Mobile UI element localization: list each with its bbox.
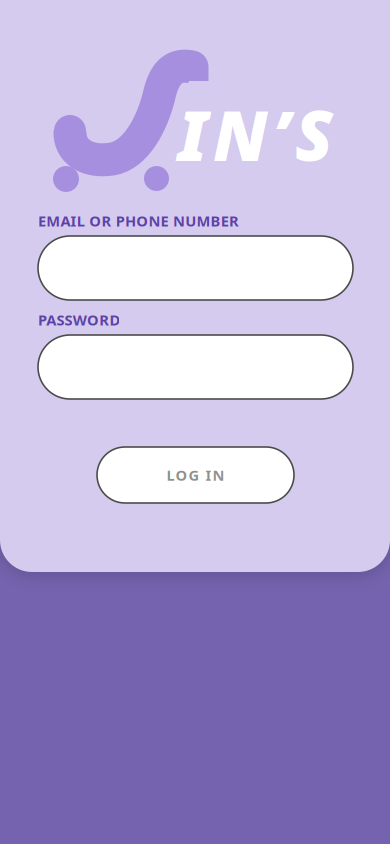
staticText: PASSWORD [38, 310, 120, 329]
staticText: LOG IN [166, 465, 224, 485]
button[interactable]: LOG IN [97, 447, 294, 503]
staticText: EMAIL OR PHONE NUMBER [38, 211, 239, 230]
staticText: IN’S [178, 88, 333, 180]
